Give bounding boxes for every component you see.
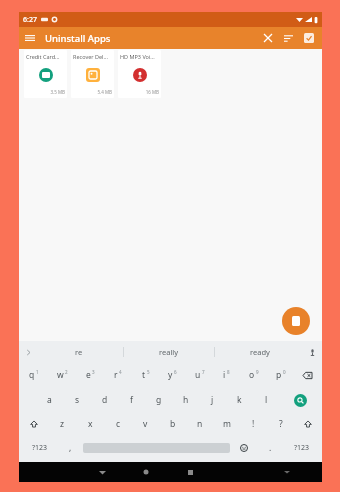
button[interactable]: Backspace	[294, 362, 321, 388]
staticText: w	[57, 369, 64, 381]
button[interactable]: y	[159, 362, 186, 388]
staticText: r	[114, 369, 118, 381]
staticText: 7	[202, 369, 205, 375]
button[interactable]: Home	[124, 462, 168, 482]
button[interactable]: r	[104, 362, 132, 388]
button[interactable]: Select all	[298, 27, 320, 49]
button[interactable]: h	[172, 388, 199, 412]
staticText: 6:27	[23, 15, 37, 25]
staticText: i	[223, 369, 226, 381]
button[interactable]: !	[240, 412, 267, 436]
button[interactable]: g	[145, 388, 172, 412]
button[interactable]: o	[240, 362, 267, 388]
staticText: z	[60, 418, 64, 430]
button[interactable]: n	[186, 412, 213, 436]
staticText: 2	[65, 369, 68, 375]
button[interactable]: ready	[215, 341, 305, 362]
button[interactable]: Sort	[278, 28, 298, 48]
staticText: 8	[227, 369, 230, 375]
button[interactable]: Credit Card...	[24, 50, 67, 98]
button[interactable]: ?	[267, 412, 294, 436]
staticText: 4	[119, 369, 122, 375]
button[interactable]: ?123	[283, 436, 320, 460]
button[interactable]: m	[213, 412, 240, 436]
staticText: ?	[279, 418, 283, 430]
staticText: x	[88, 418, 93, 430]
button[interactable]: u	[186, 362, 213, 388]
button[interactable]: Uninstall	[282, 307, 310, 335]
staticText: Credit Card...	[26, 53, 60, 60]
button[interactable]: Close	[258, 28, 278, 48]
button[interactable]: a	[35, 388, 63, 412]
staticText: 5.4 MB	[73, 89, 112, 95]
button[interactable]: p	[267, 362, 294, 388]
staticText: c	[116, 418, 121, 430]
button[interactable]: re	[34, 341, 123, 362]
button[interactable]: j	[199, 388, 226, 412]
staticText: !	[252, 418, 255, 430]
staticText: g	[156, 394, 162, 406]
button[interactable]: ,	[58, 436, 83, 460]
button[interactable]: e	[76, 362, 104, 388]
staticText: k	[237, 394, 242, 406]
staticText: 9	[256, 369, 259, 375]
button[interactable]: Emoji	[230, 436, 258, 460]
button[interactable]: Menu	[19, 27, 41, 49]
staticText: 6	[174, 369, 177, 375]
staticText: q	[29, 369, 35, 381]
button[interactable]: Hide keyboard	[265, 462, 309, 482]
button[interactable]: ?123	[21, 436, 58, 460]
button[interactable]: k	[226, 388, 253, 412]
staticText: .	[269, 442, 272, 454]
button[interactable]: .	[258, 436, 283, 460]
button[interactable]: i	[213, 362, 240, 388]
button[interactable]: b	[159, 412, 186, 436]
staticText: ready	[250, 347, 270, 357]
button[interactable]: Search	[280, 388, 321, 412]
button[interactable]: x	[76, 412, 104, 436]
staticText: 1	[36, 369, 39, 375]
button[interactable]: z	[48, 412, 76, 436]
staticText: d	[102, 394, 108, 406]
button[interactable]: Back	[80, 462, 124, 482]
staticText: n	[197, 418, 203, 430]
button[interactable]: More	[22, 346, 34, 358]
staticText: f	[130, 394, 133, 406]
button[interactable]: t	[132, 362, 159, 388]
staticText: o	[249, 369, 255, 381]
button[interactable]: s	[63, 388, 91, 412]
staticText: ?123	[294, 443, 310, 453]
staticText: u	[195, 369, 201, 381]
staticText: 0	[283, 369, 286, 375]
staticText: l	[265, 394, 268, 406]
button[interactable]: d	[91, 388, 118, 412]
staticText: v	[143, 418, 148, 430]
staticText: t	[142, 369, 146, 381]
button[interactable]: w	[48, 362, 76, 388]
button[interactable]: HD MP3 Voi...	[118, 50, 161, 98]
staticText: 5	[147, 369, 150, 375]
button[interactable]: f	[118, 388, 145, 412]
button[interactable]: Recover Del...	[71, 50, 114, 98]
button[interactable]: really	[124, 341, 214, 362]
button[interactable]: Voice input	[305, 345, 319, 359]
button[interactable]: v	[132, 412, 159, 436]
staticText: s	[75, 394, 80, 406]
button[interactable]: l	[253, 388, 280, 412]
staticText: 3	[92, 369, 95, 375]
button[interactable]: Recents	[168, 462, 212, 482]
staticText: j	[211, 394, 214, 406]
staticText: ,	[69, 442, 72, 454]
staticText: b	[170, 418, 176, 430]
staticText: re	[75, 347, 83, 357]
button[interactable]: Shift	[294, 412, 321, 436]
button[interactable]: q	[20, 362, 48, 388]
staticText: Uninstall Apps	[45, 32, 111, 45]
staticText: m	[223, 418, 231, 430]
staticText: e	[86, 369, 91, 381]
button[interactable]: Shift	[20, 412, 48, 436]
staticText: 3.5 MB	[26, 89, 65, 95]
button[interactable]: c	[104, 412, 132, 436]
staticText: 16 MB	[120, 89, 159, 95]
